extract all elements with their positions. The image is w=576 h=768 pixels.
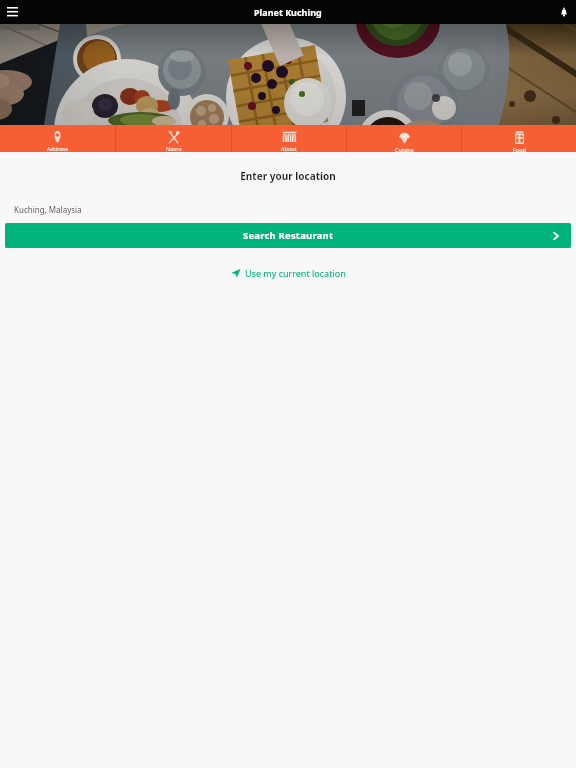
button[interactable]: Use my current location xyxy=(229,266,348,280)
button[interactable]: Cuisine xyxy=(347,125,461,152)
staticText: Planet Kuching xyxy=(254,6,322,18)
button[interactable]: Search Restaurant xyxy=(5,223,571,248)
staticText: Name xyxy=(166,145,182,152)
staticText: Search Restaurant xyxy=(243,229,334,242)
staticText: Kuching, Malaysia xyxy=(14,204,82,215)
button[interactable]: Notifications xyxy=(552,0,576,24)
button[interactable]: Address xyxy=(0,125,115,152)
staticText: About xyxy=(281,145,297,152)
button[interactable]: About xyxy=(232,125,346,152)
staticText: Address xyxy=(47,145,68,152)
staticText: Enter your location xyxy=(0,169,576,183)
button[interactable]: Food xyxy=(462,125,576,152)
staticText: Use my current location xyxy=(245,267,346,279)
staticText: Cuisine xyxy=(395,146,414,152)
staticText: Food xyxy=(513,146,526,152)
button[interactable]: Name xyxy=(116,125,231,152)
button[interactable]: Menu xyxy=(0,0,24,24)
